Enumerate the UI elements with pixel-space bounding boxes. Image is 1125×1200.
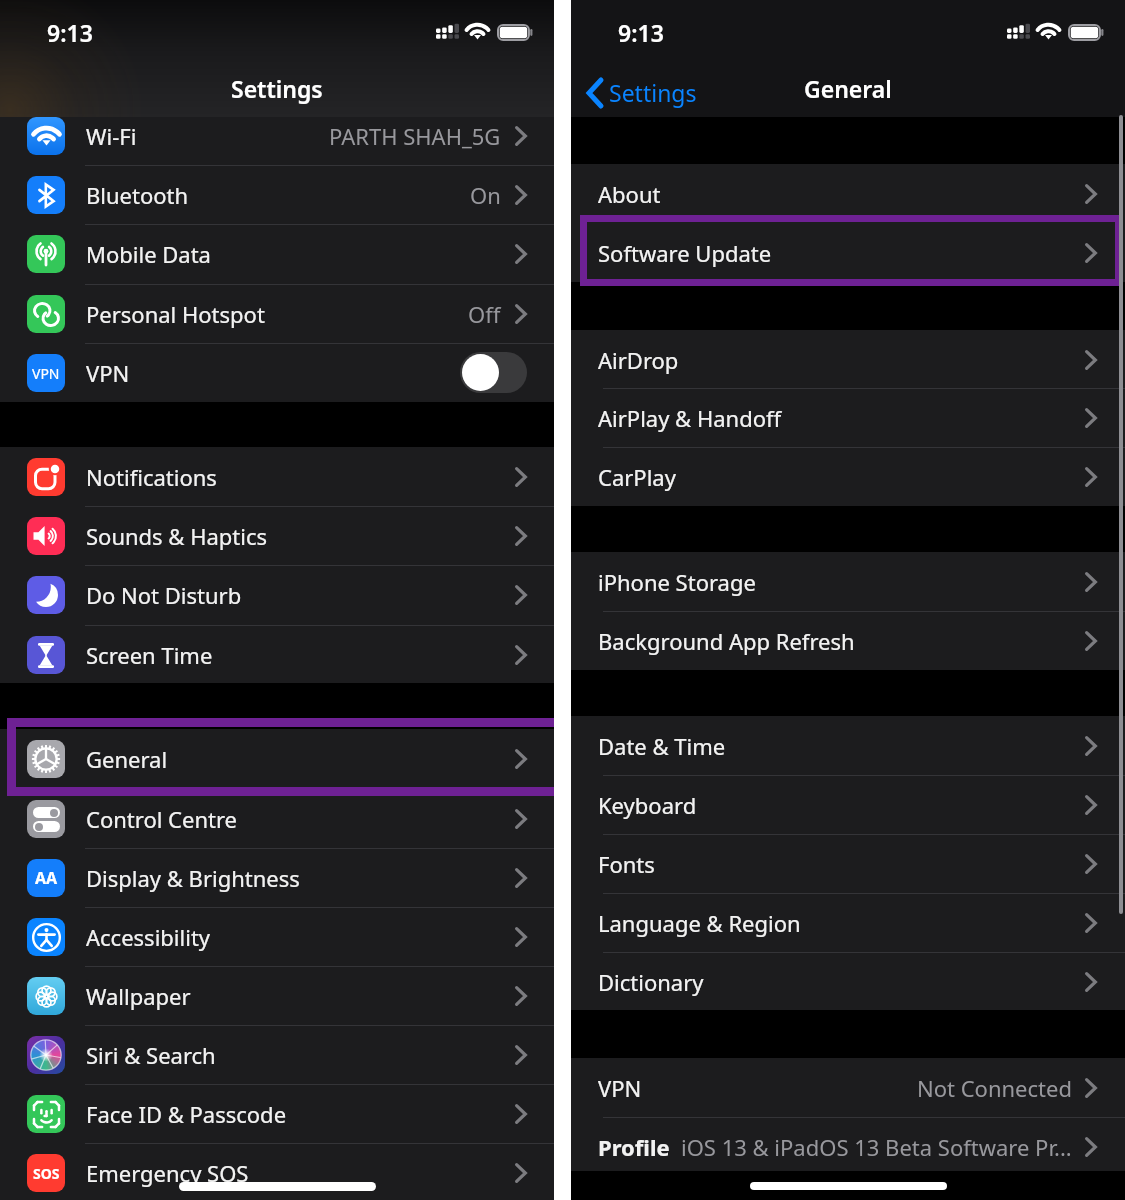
staticText: Bluetooth — [86, 180, 189, 210]
staticText: 9:13 — [618, 17, 664, 48]
button[interactable]: Keyboard — [571, 775, 1125, 834]
staticText: AirDrop — [598, 345, 679, 375]
button[interactable]: AirDrop — [571, 330, 1125, 389]
staticText: Personal Hotspot — [86, 299, 265, 329]
staticText: VPN — [32, 364, 60, 383]
staticText: Sounds & Haptics — [86, 521, 268, 551]
staticText: Emergency SOS — [86, 1158, 249, 1188]
staticText: Do Not Disturb — [86, 580, 242, 610]
button[interactable]: Settings — [587, 77, 697, 108]
staticText: Keyboard — [598, 790, 697, 820]
button[interactable]: Language & Region — [571, 893, 1125, 952]
button[interactable]: About — [571, 164, 1125, 223]
staticText: Dictionary — [598, 967, 704, 997]
staticText: PARTH SHAH_5G — [329, 121, 501, 151]
button[interactable]: AA — [0, 848, 554, 907]
button[interactable]: Notifications — [0, 447, 554, 506]
button[interactable]: Software Update — [571, 223, 1125, 282]
button[interactable]: VPN — [0, 343, 554, 402]
button[interactable]: Do Not Disturb — [0, 565, 554, 624]
staticText: Settings — [609, 77, 697, 108]
button[interactable]: Personal Hotspot — [0, 284, 554, 343]
button[interactable]: Screen Time — [0, 625, 554, 684]
button[interactable]: Wallpaper — [0, 966, 554, 1025]
staticText: General — [86, 744, 168, 774]
staticText: Face ID & Passcode — [86, 1099, 287, 1129]
staticText: SOS — [33, 1164, 60, 1183]
staticText: CarPlay — [598, 462, 676, 492]
staticText: Date & Time — [598, 731, 726, 761]
button[interactable]: Sounds & Haptics — [0, 506, 554, 565]
button[interactable]: SOS — [0, 1143, 554, 1200]
staticText: Accessibility — [86, 922, 211, 952]
button[interactable]: Face ID & Passcode — [0, 1084, 554, 1143]
button[interactable]: Control Centre — [0, 789, 554, 848]
staticText: Off — [468, 299, 501, 329]
staticText: Notifications — [86, 462, 217, 492]
staticText: Screen Time — [86, 640, 213, 670]
button[interactable]: Date & Time — [571, 716, 1125, 775]
staticText: iPhone Storage — [598, 567, 756, 597]
staticText: Settings — [231, 73, 323, 104]
button[interactable]: VPN — [571, 1058, 1125, 1117]
staticText: Not Connected — [917, 1073, 1072, 1103]
staticText: Display & Brightness — [86, 863, 300, 893]
staticText: Fonts — [598, 849, 655, 879]
staticText: AirPlay & Handoff — [598, 403, 782, 433]
button[interactable]: General — [0, 729, 554, 788]
staticText: iOS 13 & iPadOS 13 Beta Software Pr... — [681, 1132, 1072, 1162]
button[interactable]: CarPlay — [571, 447, 1125, 506]
staticText: Siri & Search — [86, 1040, 216, 1070]
staticText: About — [598, 179, 661, 209]
staticText: VPN — [598, 1073, 642, 1103]
staticText: Wallpaper — [86, 981, 191, 1011]
staticText: 9:13 — [47, 17, 93, 48]
staticText: Profile — [598, 1132, 670, 1162]
staticText: On — [470, 180, 501, 210]
staticText: VPN — [86, 358, 130, 388]
staticText: General — [804, 73, 892, 104]
staticText: Language & Region — [598, 908, 801, 938]
button[interactable]: Dictionary — [571, 952, 1125, 1011]
button[interactable]: Bluetooth — [0, 165, 554, 224]
button[interactable]: iPhone Storage — [571, 552, 1125, 611]
button[interactable]: Wi-Fi — [0, 106, 554, 165]
button[interactable]: Mobile Data — [0, 224, 554, 283]
button[interactable]: Accessibility — [0, 907, 554, 966]
staticText: Mobile Data — [86, 239, 211, 269]
button[interactable]: AirPlay & Handoff — [571, 388, 1125, 447]
button[interactable]: VPN toggle — [460, 352, 527, 393]
staticText: Wi-Fi — [86, 121, 137, 151]
staticText: Software Update — [598, 238, 772, 268]
staticText: Control Centre — [86, 804, 238, 834]
button[interactable]: Fonts — [571, 834, 1125, 893]
button[interactable]: Profile — [571, 1117, 1125, 1176]
staticText: AA — [35, 867, 58, 889]
staticText: Background App Refresh — [598, 626, 855, 656]
button[interactable]: Background App Refresh — [571, 611, 1125, 670]
button[interactable]: Siri & Search — [0, 1025, 554, 1084]
